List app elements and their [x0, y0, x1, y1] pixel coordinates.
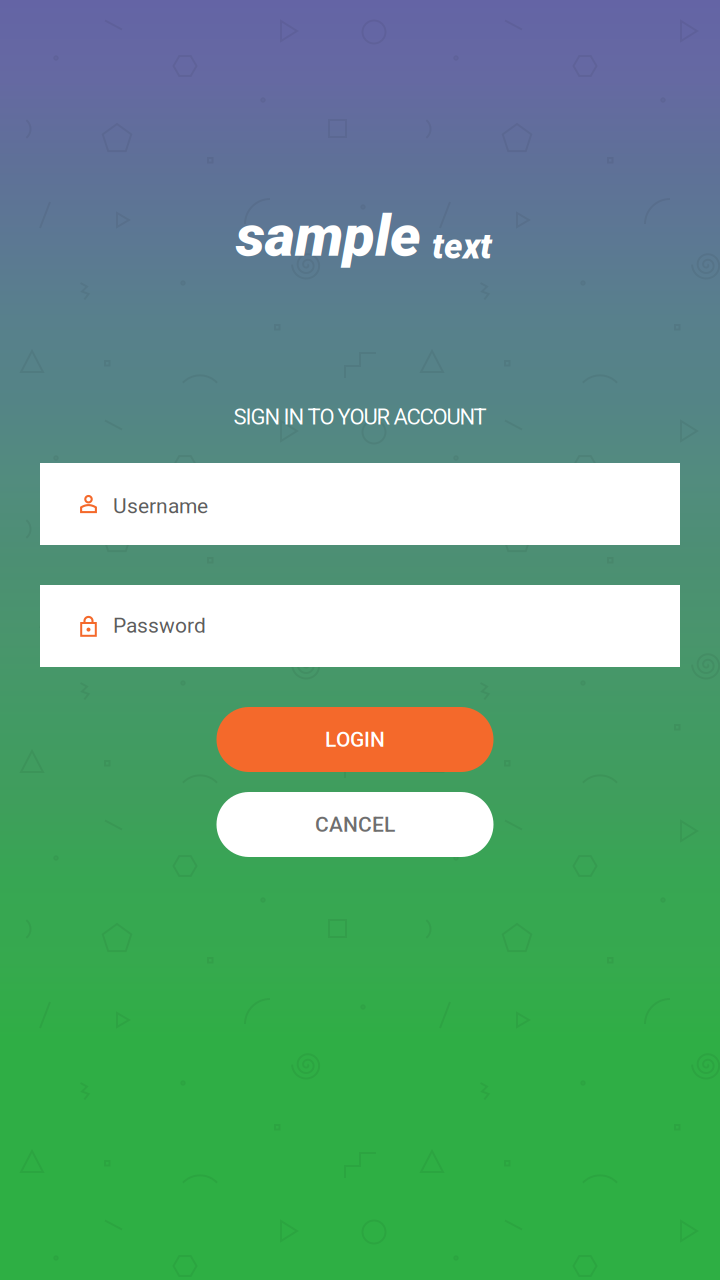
- button[interactable]: Password: [40, 585, 680, 667]
- button[interactable]: Username: [40, 463, 680, 545]
- staticText: text: [432, 226, 492, 267]
- staticText: SIGN IN TO YOUR ACCOUNT: [233, 404, 486, 430]
- button[interactable]: LOGIN: [216, 707, 493, 772]
- staticText: CANCEL: [315, 812, 395, 837]
- button[interactable]: CANCEL: [216, 792, 493, 857]
- staticText: Username: [113, 494, 208, 518]
- staticText: LOGIN: [325, 727, 385, 752]
- staticText: Password: [113, 613, 206, 638]
- staticText: sample: [236, 202, 421, 270]
